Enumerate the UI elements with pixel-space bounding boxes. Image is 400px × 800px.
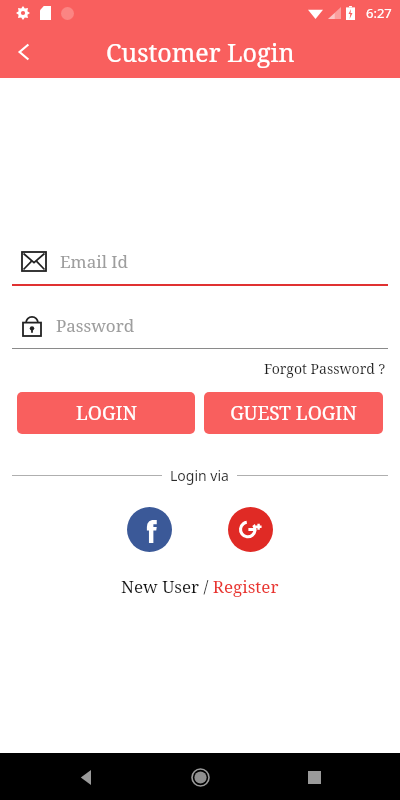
button[interactable]: Recent apps bbox=[296, 759, 332, 795]
button[interactable]: Login with Facebook bbox=[127, 507, 172, 552]
staticText: Password bbox=[56, 314, 135, 337]
staticText: Login via bbox=[170, 466, 229, 485]
staticText: Customer Login bbox=[106, 35, 295, 69]
button[interactable]: Home bbox=[181, 758, 219, 796]
button[interactable]: GUEST LOGIN bbox=[204, 392, 383, 434]
button[interactable]: LOGIN bbox=[17, 392, 195, 434]
staticText: LOGIN bbox=[76, 400, 137, 426]
staticText: 6:27 bbox=[366, 4, 392, 22]
staticText: GUEST LOGIN bbox=[230, 400, 357, 426]
staticText: Forgot Password ? bbox=[264, 359, 386, 378]
staticText: Email Id bbox=[60, 250, 129, 273]
button[interactable]: New User / Register bbox=[115, 573, 285, 600]
button[interactable]: Login with Google bbox=[228, 507, 273, 552]
staticText: New User / Register bbox=[121, 575, 279, 598]
button[interactable]: Back bbox=[68, 759, 104, 795]
button[interactable]: Password bbox=[22, 308, 386, 342]
button[interactable]: Forgot Password ? bbox=[262, 357, 388, 380]
button[interactable]: Back bbox=[0, 28, 48, 76]
button[interactable]: Email Id bbox=[22, 244, 386, 278]
